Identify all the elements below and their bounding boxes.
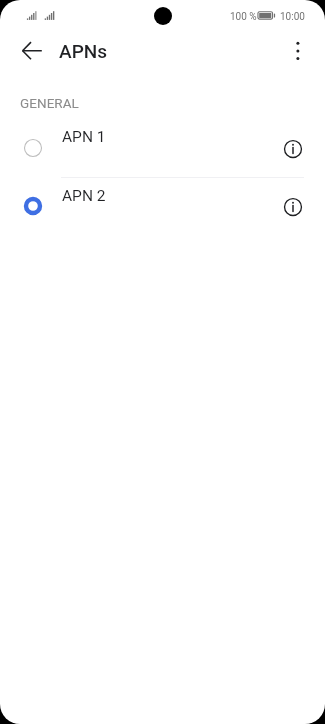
button[interactable]: More options (278, 31, 318, 71)
staticText: GENERAL (20, 95, 79, 111)
staticText: APN 1 (62, 128, 106, 146)
staticText: 100 % (230, 11, 257, 23)
button[interactable]: APN 2 details (277, 191, 309, 223)
staticText: APN 2 (62, 187, 106, 205)
button[interactable]: APN 1 details (277, 133, 309, 165)
button[interactable]: Back (12, 31, 52, 71)
staticText: 10:00 (280, 11, 305, 23)
staticText: APNs (59, 40, 108, 62)
button[interactable]: APN 2 (0, 177, 325, 235)
button[interactable]: APN 1 (0, 119, 325, 177)
